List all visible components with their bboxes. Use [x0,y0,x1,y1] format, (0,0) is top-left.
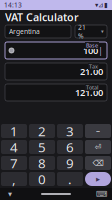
staticText: 121.00 [75,86,103,99]
button[interactable]: Switch keyboard [95,189,109,199]
button[interactable]: 9 [57,156,83,170]
staticText: VAT Calculator [5,10,79,24]
staticText: 14:13 [4,1,22,9]
staticText: 6 [66,138,74,156]
staticText: 0 [38,170,46,188]
staticText: 4 [10,138,18,156]
staticText: ▾ [8,189,12,199]
button[interactable]: 8 [29,156,55,170]
staticText: 8 [38,154,46,172]
button[interactable]: 1 [1,124,27,138]
staticText: 2 [38,122,46,140]
staticText: Tax [89,63,98,70]
button[interactable]: . [57,172,83,186]
button[interactable]: Submit [85,172,111,186]
staticText: ▾ [101,28,104,35]
staticText: 1 [10,122,18,140]
staticText: 21% [78,23,86,40]
staticText: ▾⊿▮ [95,1,108,9]
button[interactable]: 3 [57,124,83,138]
staticText: 7 [10,154,18,172]
staticText: – [96,126,100,136]
button[interactable]: 2 [29,124,55,138]
button[interactable]: 7 [1,156,27,170]
button[interactable]: 21% [75,25,107,38]
button[interactable]: Next field [85,140,111,154]
staticText: ⌨ [96,189,108,199]
staticText: | [98,44,103,57]
staticText: ▸ [96,174,100,184]
button[interactable]: , [1,172,27,186]
staticText: 100 [83,44,98,57]
button[interactable]: 5 [29,140,55,154]
staticText: 9 [66,154,74,172]
button[interactable]: 100 [5,42,107,59]
staticText: ⏎ [94,142,101,152]
button[interactable]: Argentina [5,25,71,38]
staticText: Argentina [9,27,40,36]
button[interactable]: 0 [29,172,55,186]
button[interactable]: 6 [57,140,83,154]
button[interactable]: 4 [1,140,27,154]
button[interactable]: Hide keyboard [3,189,17,199]
staticText: . [68,170,72,188]
staticText: Total [86,84,98,91]
staticText: 3 [66,122,74,140]
staticText: , [12,170,16,188]
button[interactable]: Backspace [85,156,111,170]
staticText: 5 [38,138,46,156]
staticText: 21.00 [80,65,103,78]
staticText: Base [86,42,98,49]
button[interactable]: Minus [85,124,111,138]
staticText: ⌫ [92,158,103,168]
